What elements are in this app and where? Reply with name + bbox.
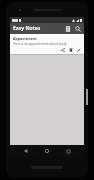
button[interactable]: Share	[59, 46, 66, 53]
button[interactable]: New note	[63, 24, 72, 33]
button[interactable]: Home	[42, 146, 52, 156]
button[interactable]: Edit	[75, 46, 82, 53]
staticText: Easy Notes	[13, 25, 41, 32]
button[interactable]: Delete	[67, 46, 74, 53]
button[interactable]: Search	[73, 24, 82, 33]
staticText: Appointment	[13, 36, 37, 41]
button[interactable]: Back	[21, 146, 31, 156]
button[interactable]: Recent apps	[63, 146, 73, 156]
staticText: Here is an appointment about study	[13, 42, 67, 46]
button[interactable]: Appointment	[10, 34, 84, 54]
